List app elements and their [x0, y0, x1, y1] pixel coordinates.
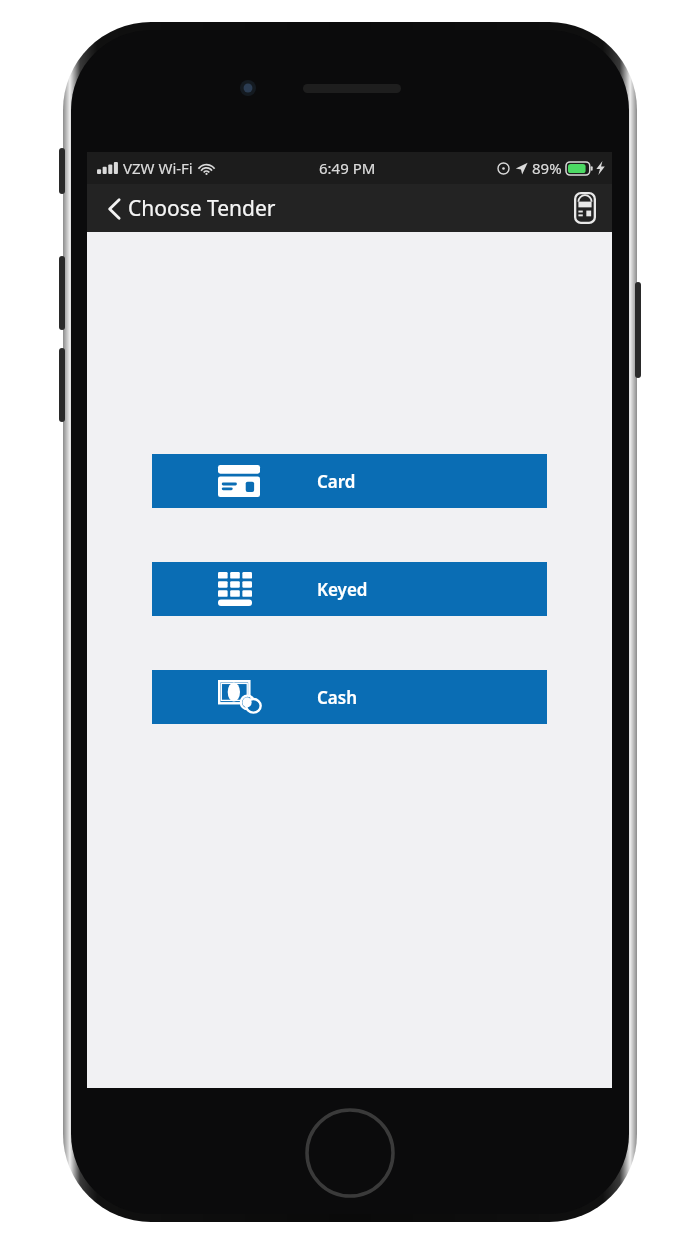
button[interactable]: Card: [152, 454, 547, 508]
staticText: VZW Wi-Fi: [123, 158, 193, 178]
button[interactable]: Cash: [152, 670, 547, 724]
staticText: Card: [317, 470, 356, 493]
staticText: Keyed: [317, 578, 368, 601]
staticText: 6:49 PM: [319, 158, 376, 178]
button[interactable]: Keyed: [152, 562, 547, 616]
button[interactable]: Choose Tender: [87, 188, 288, 229]
button[interactable]: Card reader: [568, 186, 602, 230]
staticText: Cash: [317, 686, 358, 709]
staticText: 89%: [532, 158, 562, 178]
staticText: Choose Tender: [128, 194, 276, 223]
